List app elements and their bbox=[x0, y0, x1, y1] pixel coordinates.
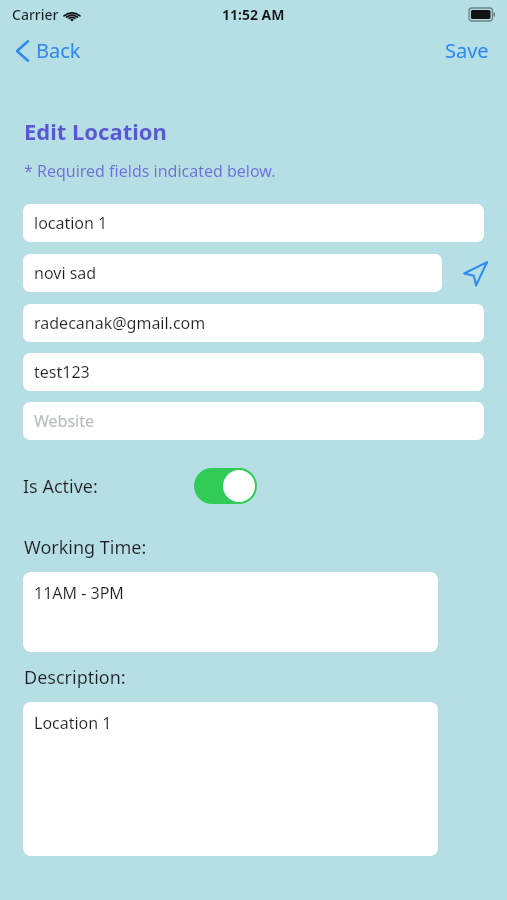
staticText: Back bbox=[36, 37, 81, 64]
staticText: Working Time: bbox=[24, 535, 147, 560]
staticText: Carrier bbox=[12, 5, 59, 24]
button[interactable]: Location 1 bbox=[23, 702, 438, 856]
staticText: Location 1 bbox=[34, 712, 112, 734]
staticText: Is Active: bbox=[23, 474, 98, 499]
staticText: Website bbox=[34, 410, 95, 432]
staticText: 11AM - 3PM bbox=[34, 582, 124, 604]
button[interactable]: location 1 bbox=[23, 204, 484, 242]
staticText: test123 bbox=[34, 361, 90, 383]
staticText: Edit Location bbox=[24, 116, 167, 146]
button[interactable]: Website bbox=[23, 402, 484, 440]
button[interactable]: Is Active toggle bbox=[194, 468, 257, 504]
staticText: * Required fields indicated below. bbox=[24, 160, 276, 182]
staticText: radecanak@gmail.com bbox=[34, 312, 206, 334]
staticText: Description: bbox=[24, 665, 126, 690]
button[interactable]: 11AM - 3PM bbox=[23, 572, 438, 652]
button[interactable]: Use current location bbox=[455, 253, 495, 293]
button[interactable]: Back bbox=[10, 33, 87, 68]
staticText: Save bbox=[445, 37, 489, 64]
button[interactable]: radecanak@gmail.com bbox=[23, 304, 484, 342]
staticText: novi sad bbox=[34, 262, 97, 284]
button[interactable]: Save bbox=[439, 33, 495, 68]
staticText: 11:52 AM bbox=[222, 5, 285, 24]
staticText: location 1 bbox=[34, 212, 108, 234]
button[interactable]: test123 bbox=[23, 353, 484, 391]
button[interactable]: novi sad bbox=[23, 254, 442, 292]
